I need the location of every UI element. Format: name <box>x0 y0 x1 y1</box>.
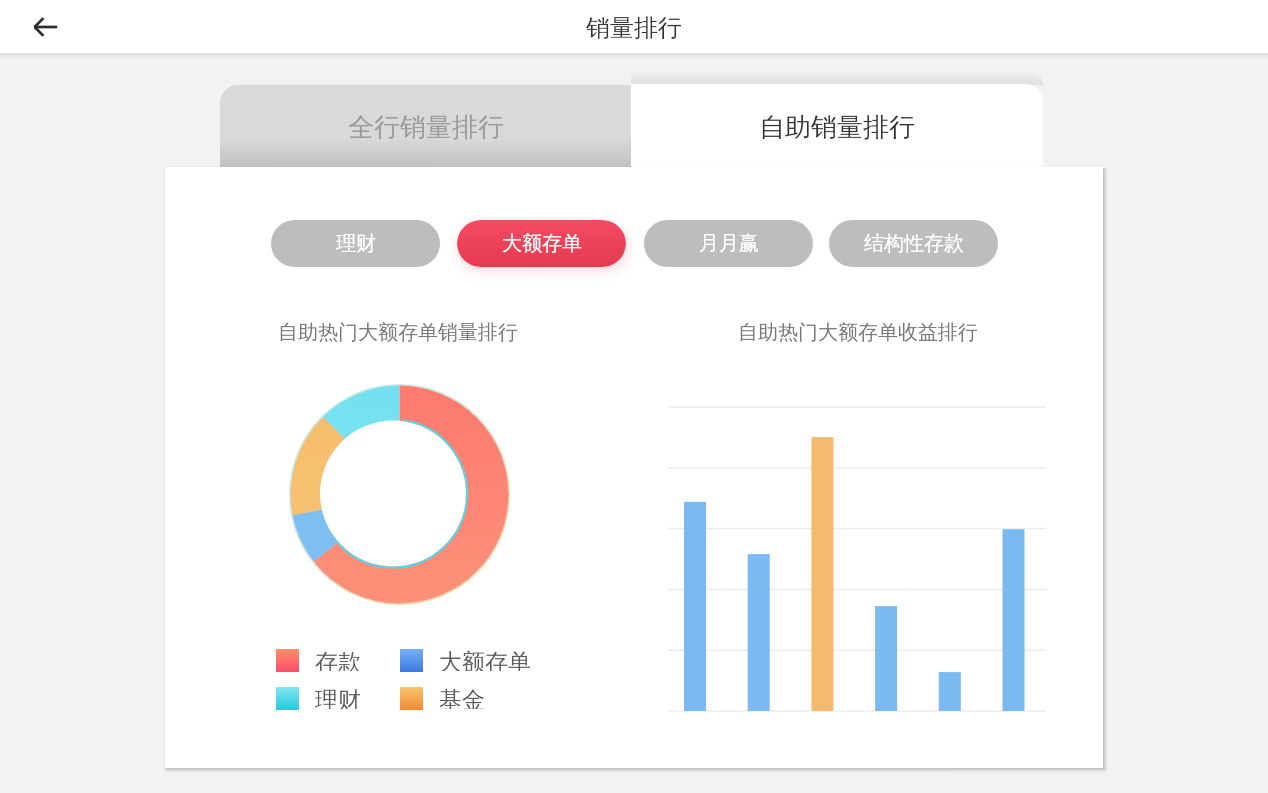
button[interactable]: 基金 <box>400 687 540 710</box>
button[interactable]: 月月赢 <box>644 220 813 267</box>
button[interactable]: 理财 <box>276 687 416 710</box>
staticText: 存款 <box>315 648 361 671</box>
button[interactable]: 理财 <box>271 220 440 267</box>
staticText: 基金 <box>439 686 485 709</box>
staticText: 大额存单 <box>502 231 582 256</box>
button[interactable]: 大额存单 <box>457 220 626 267</box>
staticText: 销量排行 <box>586 13 682 43</box>
staticText: 理财 <box>336 231 376 256</box>
staticText: 自助销量排行 <box>759 111 915 144</box>
staticText: 月月赢 <box>699 231 759 256</box>
button[interactable]: 自助销量排行 <box>631 84 1043 168</box>
staticText: 理财 <box>315 686 361 709</box>
staticText: 大额存单 <box>439 648 531 671</box>
staticText: 结构性存款 <box>864 231 964 256</box>
button[interactable]: 大额存单 <box>400 649 540 672</box>
staticText: 自助热门大额存单销量排行 <box>278 320 518 345</box>
button[interactable]: Back <box>21 3 69 51</box>
button[interactable]: 全行销量排行 <box>220 85 631 168</box>
button[interactable]: 结构性存款 <box>829 220 998 267</box>
staticText: 全行销量排行 <box>348 111 504 144</box>
staticText: 自助热门大额存单收益排行 <box>738 320 978 345</box>
button[interactable]: 存款 <box>276 649 416 672</box>
